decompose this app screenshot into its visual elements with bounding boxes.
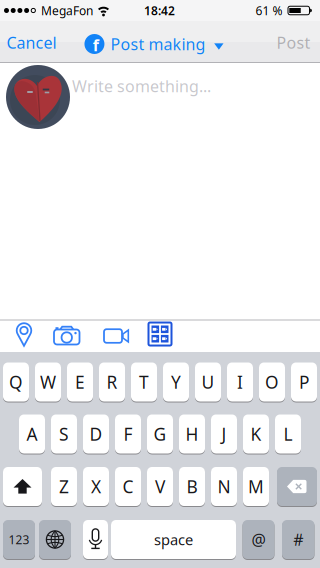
button[interactable]: Z — [51, 467, 77, 507]
button[interactable]: Q — [3, 362, 29, 402]
staticText: 18:42 — [144, 2, 175, 18]
staticText: L — [283, 422, 292, 445]
button[interactable]: G — [147, 414, 173, 454]
button[interactable]: Dictate — [83, 520, 108, 560]
button[interactable]: S — [51, 414, 77, 454]
staticText: # — [293, 529, 303, 550]
button[interactable]: f — [84, 31, 224, 57]
button[interactable]: Delete — [277, 467, 317, 507]
staticText: Z — [59, 475, 69, 498]
button[interactable]: R — [99, 362, 125, 402]
button[interactable]: B — [179, 467, 205, 507]
staticText: I — [237, 370, 243, 393]
button[interactable]: X — [83, 467, 109, 507]
staticText: f — [93, 34, 99, 56]
button[interactable]: A — [19, 414, 45, 454]
button[interactable]: Y — [163, 362, 189, 402]
staticText: P — [299, 370, 309, 393]
button[interactable]: C — [115, 467, 141, 507]
button[interactable]: E — [67, 362, 93, 402]
staticText: G — [153, 422, 166, 445]
staticText: B — [186, 475, 197, 498]
button[interactable]: Record video — [96, 321, 136, 350]
button[interactable]: D — [83, 414, 109, 454]
button[interactable]: Post — [276, 32, 310, 53]
staticText: Y — [171, 370, 181, 393]
staticText: C — [122, 475, 133, 498]
button[interactable]: Cancel — [6, 32, 56, 53]
staticText: MegaFon — [41, 2, 93, 18]
button[interactable]: K — [243, 414, 269, 454]
button[interactable]: W — [35, 362, 61, 402]
staticText: 123 — [8, 531, 29, 547]
button[interactable]: @ — [242, 520, 274, 560]
staticText: N — [217, 475, 230, 498]
staticText: V — [155, 475, 165, 498]
staticText: Post making — [110, 33, 205, 55]
button[interactable]: P — [291, 362, 317, 402]
staticText: M — [248, 475, 264, 498]
staticText: space — [154, 530, 193, 549]
staticText: @ — [251, 529, 265, 550]
button[interactable]: Shift — [3, 467, 42, 507]
staticText: Q — [9, 370, 23, 393]
button[interactable]: space — [111, 520, 236, 560]
button[interactable]: T — [131, 362, 157, 402]
staticText: D — [89, 422, 102, 445]
staticText: R — [106, 370, 117, 393]
button[interactable]: F — [115, 414, 141, 454]
button[interactable]: L — [275, 414, 301, 454]
button[interactable]: Add location — [6, 320, 42, 349]
staticText: W — [40, 370, 56, 393]
staticText: U — [201, 370, 214, 393]
staticText: O — [265, 370, 279, 393]
staticText: S — [59, 422, 69, 445]
button[interactable]: U — [195, 362, 221, 402]
staticText: F — [123, 422, 132, 445]
button[interactable]: 123 — [3, 520, 35, 560]
staticText: J — [221, 422, 226, 445]
staticText: X — [91, 475, 101, 498]
button[interactable]: J — [211, 414, 237, 454]
staticText: Write something... — [72, 75, 211, 97]
staticText: E — [75, 370, 85, 393]
button[interactable]: Choose from library — [142, 319, 178, 348]
button[interactable]: H — [179, 414, 205, 454]
staticText: Post — [276, 32, 310, 53]
button[interactable]: O — [259, 362, 285, 402]
staticText: H — [185, 422, 198, 445]
button[interactable]: I — [227, 362, 253, 402]
button[interactable]: N — [211, 467, 237, 507]
button[interactable]: V — [147, 467, 173, 507]
button[interactable]: Take photo — [47, 320, 87, 349]
staticText: 61 % — [255, 2, 282, 18]
button[interactable]: # — [282, 520, 314, 560]
staticText: K — [250, 422, 261, 445]
button[interactable]: Next keyboard — [39, 520, 71, 560]
button[interactable]: M — [243, 467, 269, 507]
staticText: A — [26, 422, 37, 445]
staticText: T — [139, 370, 149, 393]
staticText: Cancel — [6, 32, 56, 53]
